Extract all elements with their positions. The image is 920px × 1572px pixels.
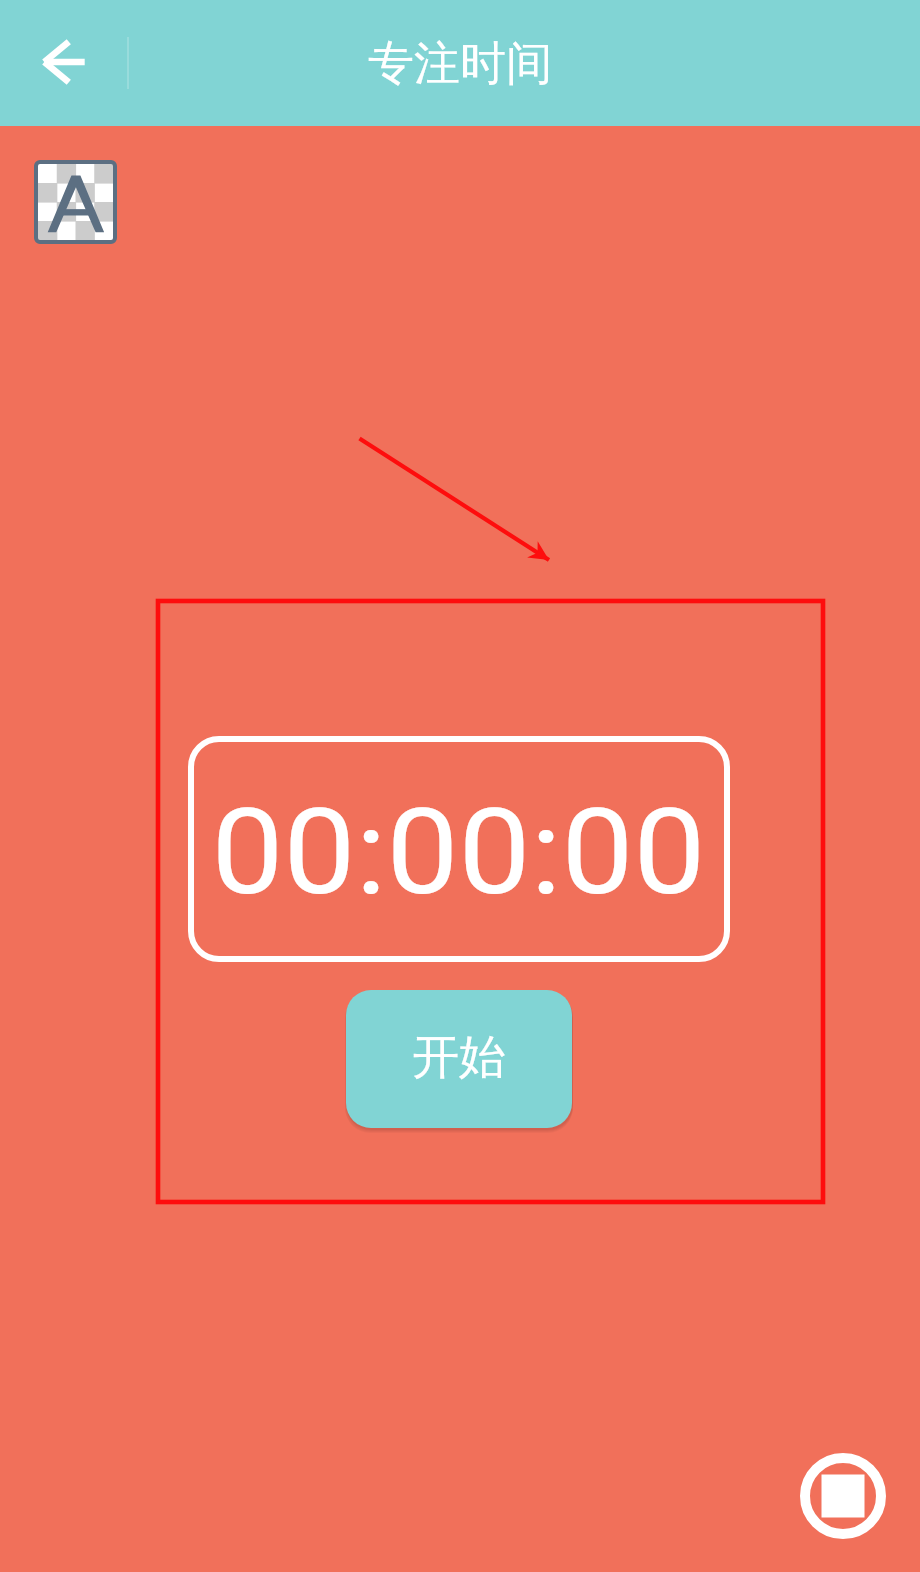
staticText: 专注时间 xyxy=(368,35,552,93)
button[interactable]: Back xyxy=(21,19,107,105)
button[interactable]: 开始 xyxy=(346,990,572,1128)
staticText: 00:00:00 xyxy=(212,784,706,922)
staticText: 开始 xyxy=(412,1028,506,1087)
button[interactable]: Stop xyxy=(797,1450,889,1542)
